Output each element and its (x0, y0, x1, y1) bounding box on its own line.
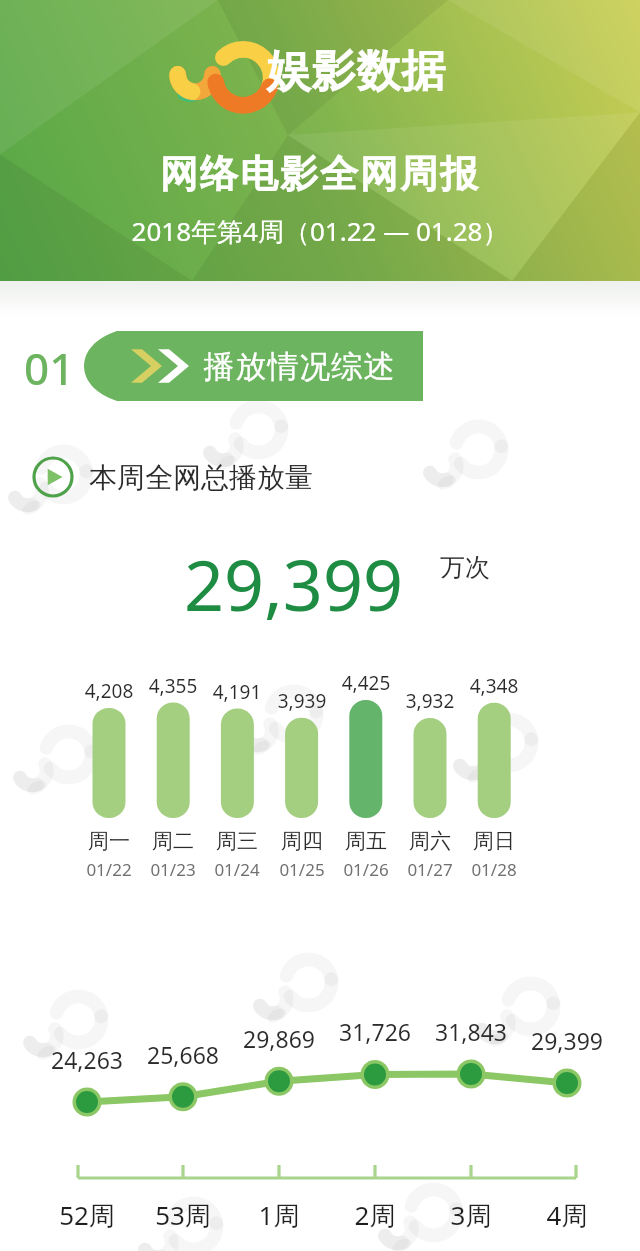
staticText: 4,355 (141, 673, 205, 699)
staticText: 01/25 (268, 858, 336, 882)
staticText: 娱影数据 (266, 44, 446, 99)
staticText: 29,869 (231, 1023, 327, 1053)
staticText: 4,348 (462, 673, 526, 699)
staticText: 01 (24, 338, 75, 398)
staticText: 网络电影全网周报 (0, 150, 640, 198)
staticText: 周三 (203, 828, 271, 856)
staticText: 周六 (396, 828, 464, 856)
staticText: 24,263 (39, 1044, 135, 1074)
staticText: 31,726 (327, 1016, 423, 1046)
staticText: 01/28 (460, 858, 528, 882)
staticText: 万次 (440, 552, 490, 583)
staticText: 52周 (39, 1197, 135, 1233)
staticText: 01/27 (396, 858, 464, 882)
staticText: 3,932 (398, 688, 462, 714)
button[interactable]: Play (32, 450, 302, 504)
staticText: 3周 (423, 1197, 519, 1233)
other: Play (32, 456, 74, 498)
staticText: 4,191 (205, 679, 269, 705)
staticText: 4,425 (334, 670, 398, 696)
staticText: 1周 (231, 1197, 327, 1233)
staticText: 本周全网总播放量 (89, 460, 313, 495)
staticText: 2018年第4周（01.22 — 01.28） (0, 213, 640, 249)
staticText: 01/26 (332, 858, 400, 882)
staticText: 3,939 (270, 688, 334, 714)
staticText: 4周 (519, 1197, 615, 1233)
staticText: 31,843 (423, 1016, 519, 1046)
staticText: 周日 (460, 828, 528, 856)
staticText: 周二 (139, 828, 207, 856)
staticText: 01/23 (139, 858, 207, 882)
staticText: 53周 (135, 1197, 231, 1233)
staticText: 29,399 (519, 1025, 615, 1055)
staticText: 29,399 (184, 536, 403, 631)
staticText: 01/24 (203, 858, 271, 882)
staticText: 周一 (75, 828, 143, 856)
staticText: 周四 (268, 828, 336, 856)
staticText: 2周 (327, 1197, 423, 1233)
staticText: 4,208 (77, 678, 141, 704)
staticText: 25,668 (135, 1039, 231, 1069)
staticText: 播放情况综述 (203, 347, 395, 386)
button[interactable]: 播放情况综述 (83, 331, 423, 401)
staticText: 01/22 (75, 858, 143, 882)
staticText: 周五 (332, 828, 400, 856)
